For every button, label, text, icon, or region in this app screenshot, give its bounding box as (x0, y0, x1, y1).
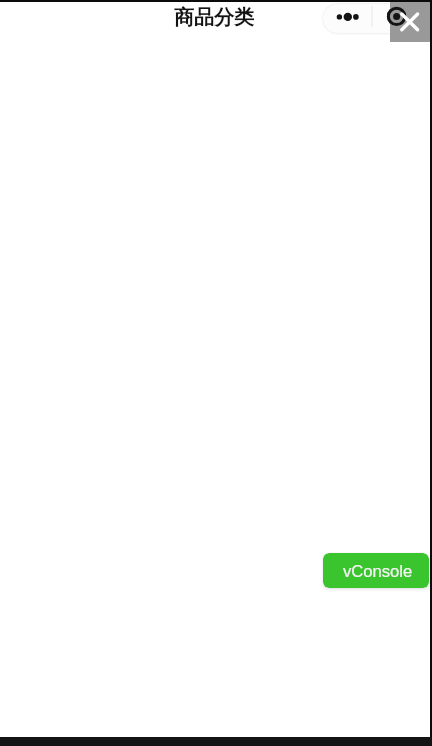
staticText: 商品分类 (174, 5, 254, 30)
button[interactable]: More options (322, 3, 372, 34)
button[interactable]: Close mini program (373, 3, 420, 34)
staticText: vConsole (343, 562, 413, 581)
button[interactable]: vConsole (323, 553, 429, 588)
